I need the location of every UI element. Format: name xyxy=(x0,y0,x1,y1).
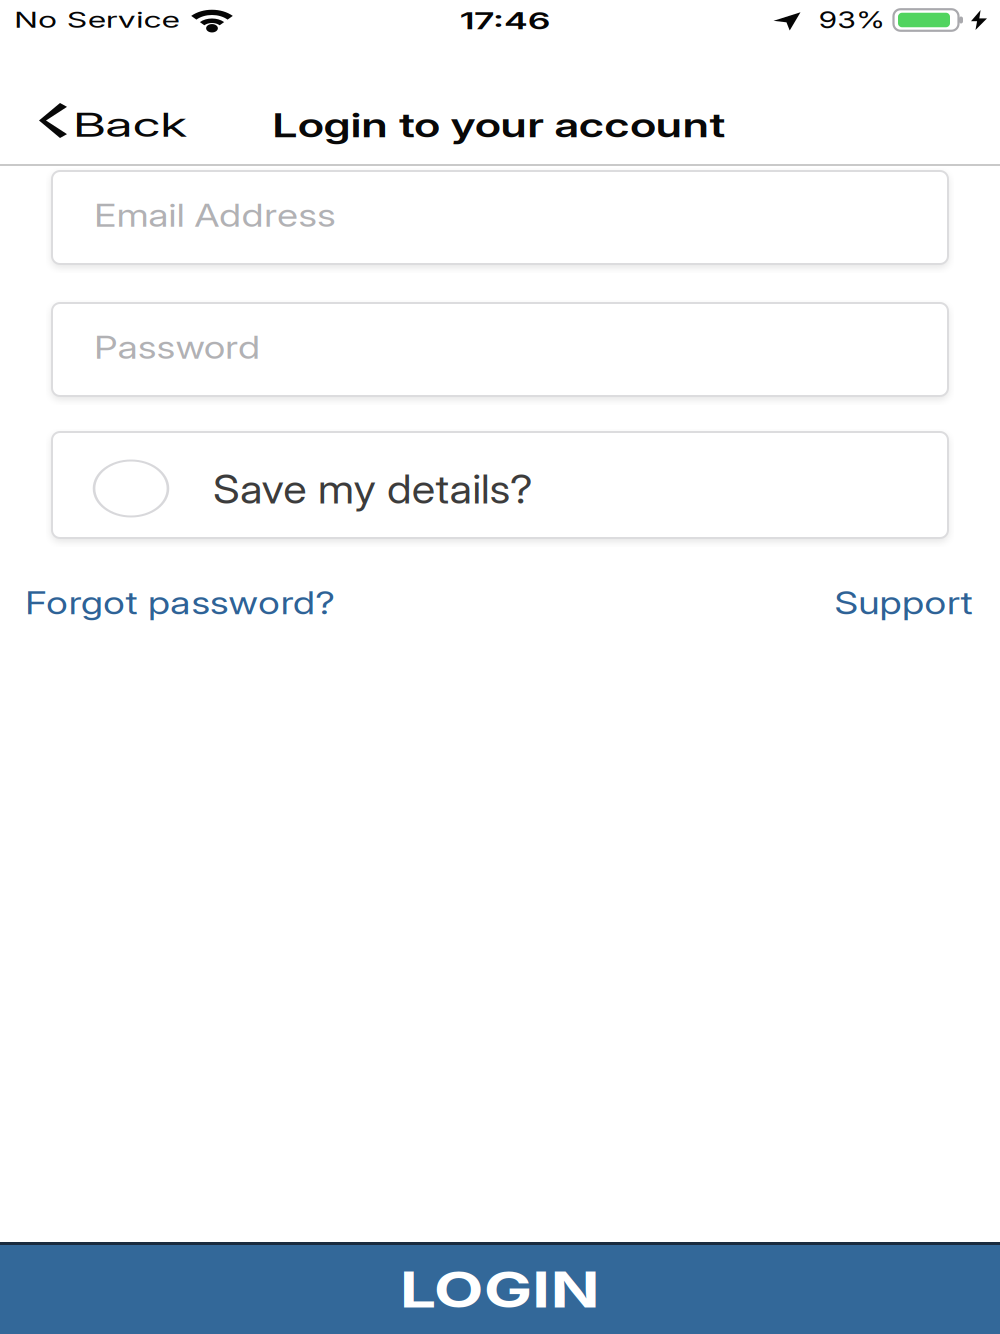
staticText: Support xyxy=(862,585,973,621)
button[interactable]: Email Address xyxy=(52,171,948,264)
button[interactable]: Support xyxy=(836,585,973,621)
staticText: Password xyxy=(94,328,235,366)
button[interactable]: Back xyxy=(0,82,168,122)
button[interactable]: Forgot password? xyxy=(25,585,331,621)
staticText: Login to your account xyxy=(331,105,667,145)
staticText: No Service xyxy=(14,7,124,33)
staticText: 17:46 xyxy=(476,8,533,34)
staticText: Back xyxy=(73,105,147,144)
button[interactable]: Save my details? xyxy=(52,432,948,538)
button[interactable]: Password xyxy=(52,303,948,396)
button[interactable]: LOGIN xyxy=(0,1242,1000,1334)
staticText: Forgot password? xyxy=(25,585,275,621)
staticText: Save my details? xyxy=(213,465,509,513)
staticText: Email Address xyxy=(94,196,299,234)
staticText: LOGIN xyxy=(423,1260,576,1319)
staticText: 93% xyxy=(827,7,877,33)
